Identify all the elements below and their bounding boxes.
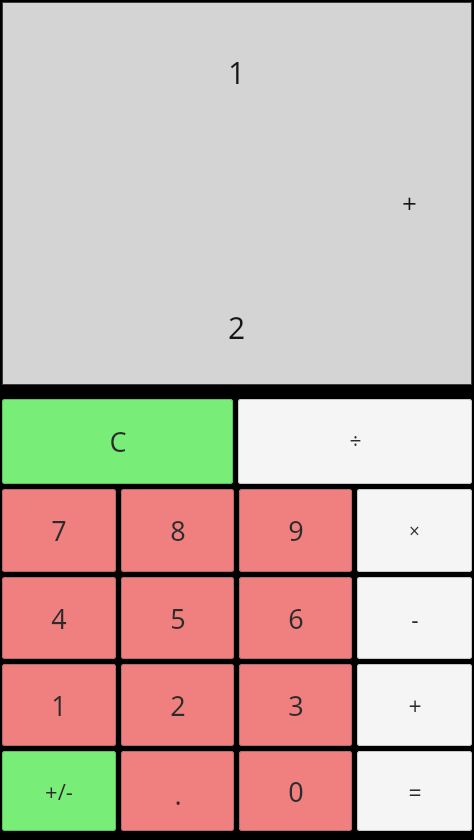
- staticText: ×: [409, 518, 420, 544]
- button[interactable]: =: [357, 751, 472, 831]
- button[interactable]: 3: [239, 664, 352, 746]
- button[interactable]: 4: [2, 577, 116, 659]
- staticText: -: [411, 603, 419, 634]
- staticText: +/-: [45, 776, 73, 806]
- button[interactable]: .: [121, 751, 234, 831]
- staticText: 5: [170, 600, 186, 637]
- button[interactable]: -: [357, 577, 472, 659]
- staticText: =: [408, 776, 422, 807]
- staticText: 0: [288, 773, 304, 810]
- button[interactable]: 9: [239, 489, 352, 572]
- staticText: 7: [51, 512, 67, 549]
- staticText: 1: [51, 687, 67, 724]
- button[interactable]: +/-: [2, 751, 116, 831]
- button[interactable]: 0: [239, 751, 352, 831]
- button[interactable]: 7: [2, 489, 116, 572]
- staticText: 9: [288, 512, 304, 549]
- button[interactable]: C: [2, 399, 233, 484]
- staticText: 4: [51, 600, 67, 637]
- staticText: .: [174, 776, 182, 813]
- button[interactable]: ÷: [238, 399, 472, 484]
- button[interactable]: 6: [239, 577, 352, 659]
- button[interactable]: +: [357, 664, 472, 746]
- staticText: +: [408, 690, 422, 721]
- button[interactable]: 8: [121, 489, 234, 572]
- staticText: 3: [288, 687, 304, 724]
- staticText: C: [109, 423, 127, 460]
- staticText: 6: [288, 600, 304, 637]
- button[interactable]: 1: [2, 664, 116, 746]
- staticText: 1: [228, 52, 246, 93]
- staticText: ÷: [349, 427, 362, 456]
- button[interactable]: ×: [357, 489, 472, 572]
- staticText: 2: [228, 307, 246, 348]
- button[interactable]: 2: [121, 664, 234, 746]
- button[interactable]: 5: [121, 577, 234, 659]
- staticText: 2: [170, 687, 186, 724]
- staticText: 8: [170, 512, 186, 549]
- staticText: +: [402, 185, 417, 220]
